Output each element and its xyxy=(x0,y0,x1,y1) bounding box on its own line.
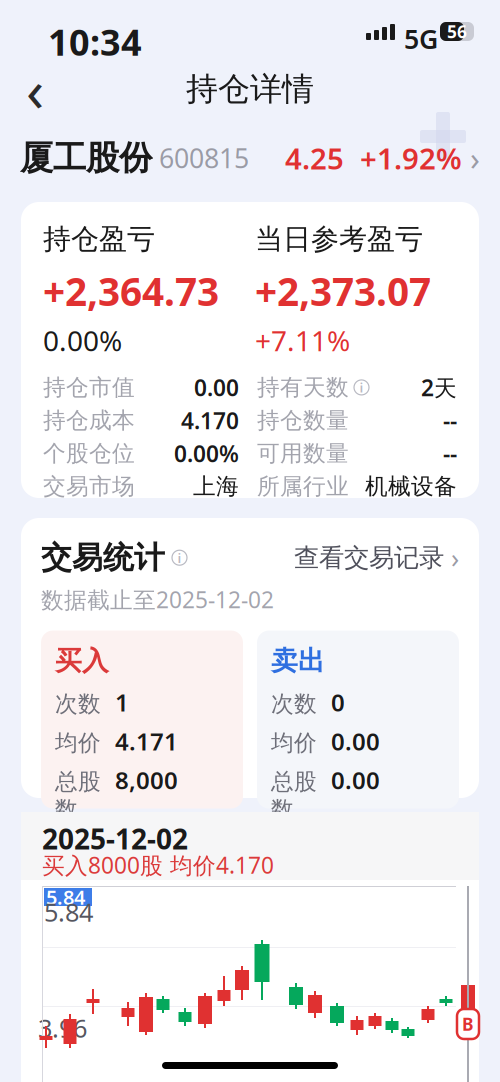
staticText: B xyxy=(462,1012,474,1035)
staticText: 600815 xyxy=(152,140,249,176)
staticText: 机械设备 xyxy=(365,472,457,500)
staticText: 个股仓位 xyxy=(43,439,135,467)
staticText: 2025-12-02 xyxy=(42,820,188,857)
staticText: 当日参考盈亏 xyxy=(255,222,423,256)
staticText: 持仓盈亏 xyxy=(43,222,155,256)
staticText: +7.11% xyxy=(255,322,350,359)
staticText: 可用数量 xyxy=(257,439,349,467)
staticText: 5.84 xyxy=(44,895,93,929)
staticText: 4.171 xyxy=(115,725,178,757)
staticText: i xyxy=(359,379,363,396)
staticText: 卖出 xyxy=(271,644,325,677)
staticText: 3.96 xyxy=(38,1011,87,1045)
staticText: 5G xyxy=(404,21,438,56)
staticText: 4.25 xyxy=(285,138,344,177)
staticText: 次数 xyxy=(55,690,101,718)
staticText: 交易统计 xyxy=(41,539,165,577)
staticText: 0.00% xyxy=(43,322,122,359)
button[interactable]: 厦工股份 xyxy=(0,130,500,186)
staticText: 均价 xyxy=(55,729,101,757)
staticText: 持仓市值 xyxy=(43,373,135,401)
staticText: 所属行业 xyxy=(257,472,349,500)
staticText: 次数 xyxy=(271,690,317,718)
staticText: 持有天数 xyxy=(257,373,349,401)
staticText: 0.00 xyxy=(331,764,380,796)
staticText: 10:34 xyxy=(48,18,142,66)
staticText: 均价 xyxy=(271,729,317,757)
staticText: 厦工股份 xyxy=(20,137,152,178)
staticText: 买入 xyxy=(55,644,109,677)
staticText: 买入8000股 均价4.170 xyxy=(42,850,274,880)
staticText: 8,000 xyxy=(115,764,178,796)
staticText: 0.00 xyxy=(331,725,380,757)
staticText: 数据截止至2025-12-02 xyxy=(41,584,274,614)
staticText: +2,364.73 xyxy=(43,265,219,317)
staticText: 0 xyxy=(331,686,345,718)
button[interactable]: 查看交易记录 xyxy=(294,536,459,579)
staticText: 1 xyxy=(115,686,129,718)
staticText: 总金额 xyxy=(271,834,317,890)
staticText: -- xyxy=(443,438,457,468)
staticText: 总股数 xyxy=(55,768,101,823)
staticText: 33,368.34 xyxy=(115,830,213,894)
staticText: 4.170 xyxy=(181,405,239,435)
staticText: 上海 xyxy=(193,472,239,500)
staticText: +2,373.07 xyxy=(255,265,431,317)
staticText: ‹ xyxy=(26,50,44,128)
staticText: -- xyxy=(443,405,457,435)
staticText: 0.00% xyxy=(174,438,239,468)
staticText: 持仓数量 xyxy=(257,406,349,434)
staticText: 总金额 xyxy=(55,834,101,890)
staticText: 查看交易记录 xyxy=(294,542,444,573)
staticText: 交易市场 xyxy=(43,472,135,500)
staticText: 56 xyxy=(447,20,467,43)
staticText: 0.00 xyxy=(194,372,239,402)
staticText: 持仓成本 xyxy=(43,406,135,434)
staticText: 持仓详情 xyxy=(186,69,314,109)
button[interactable]: Back xyxy=(8,62,62,116)
staticText: +1.92% xyxy=(344,138,462,177)
staticText: › xyxy=(462,137,480,179)
staticText: › xyxy=(444,540,459,575)
staticText: 总股数 xyxy=(271,768,317,823)
staticText: i xyxy=(177,549,181,567)
staticText: 5.84 xyxy=(46,884,85,910)
staticText: 2天 xyxy=(421,372,457,402)
